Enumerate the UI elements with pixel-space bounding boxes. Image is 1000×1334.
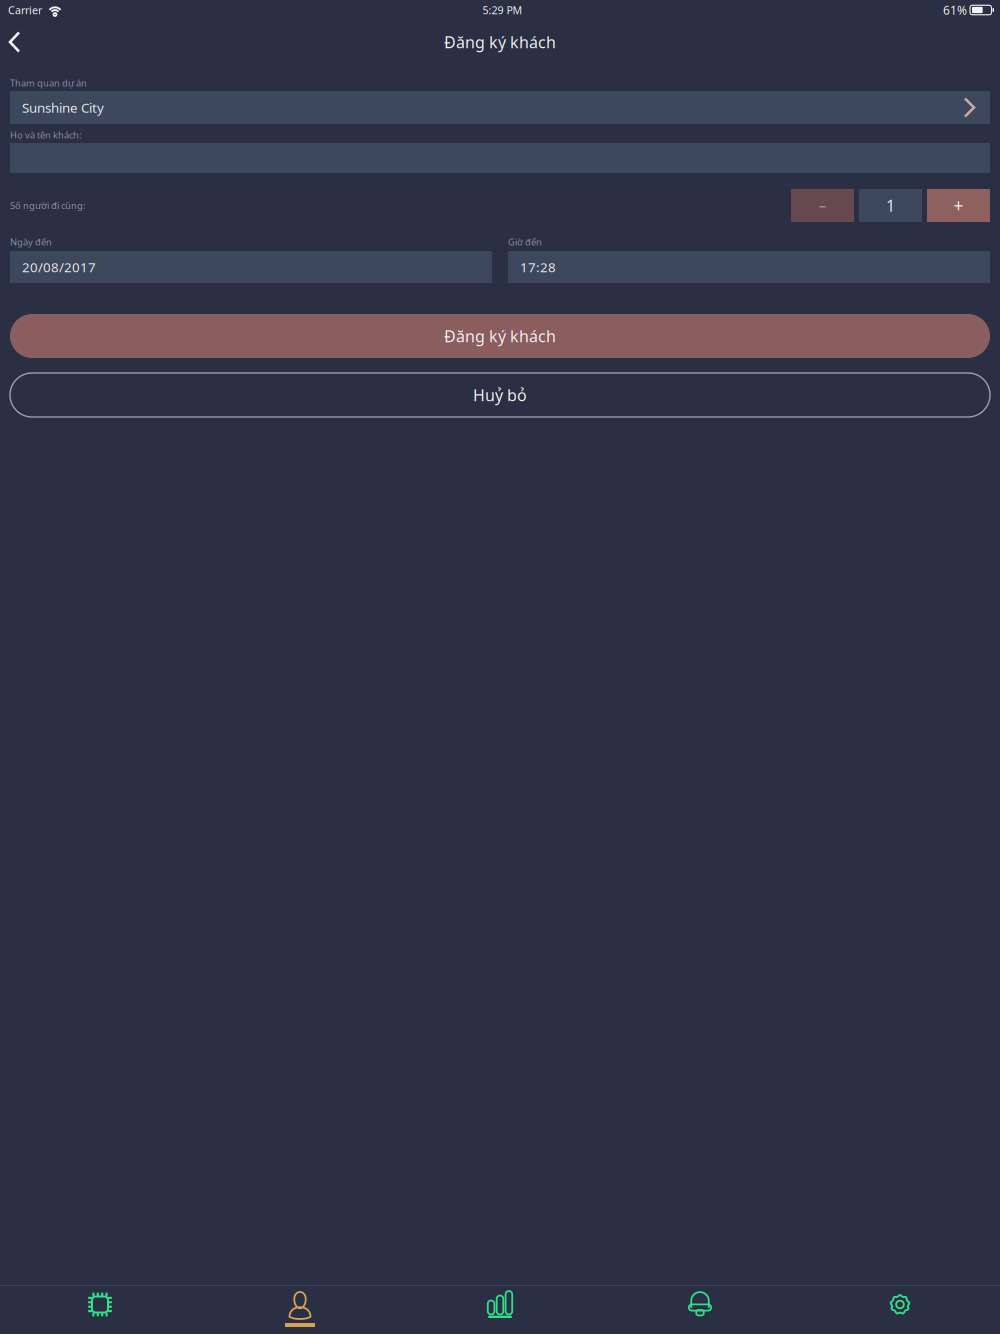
button[interactable]: Huỷ bỏ (10, 373, 990, 417)
staticText: 5:29 PM (482, 3, 522, 17)
staticText: 20/08/2017 (22, 258, 96, 276)
staticText: Số người đi cùng: (10, 199, 86, 212)
staticText: Carrier (8, 3, 42, 17)
button[interactable]: 20/08/2017 (10, 251, 492, 283)
staticText: Đăng ký khách (444, 325, 556, 347)
button[interactable]: Increase (927, 189, 990, 222)
button[interactable]: Thông báo (600, 1286, 800, 1334)
button[interactable]: Back (0, 20, 35, 64)
staticText: Tham quan dự án (10, 77, 87, 89)
staticText: Huỷ bỏ (473, 384, 527, 406)
button[interactable]: 17:28 (508, 251, 990, 283)
staticText: + (953, 194, 963, 217)
staticText: Họ và tên khách: (10, 129, 82, 141)
button[interactable]: Decrease (791, 189, 854, 222)
staticText: Giờ đến (508, 236, 542, 248)
button[interactable]: Khách hàng (200, 1286, 400, 1334)
staticText: 61% (943, 2, 967, 18)
staticText: Sunshine City (22, 99, 104, 116)
staticText: 17:28 (520, 258, 556, 276)
button[interactable]: Cài đặt (800, 1286, 1000, 1334)
button[interactable]: Sunshine City (10, 91, 990, 124)
staticText: Ngày đến (10, 236, 52, 248)
staticText: 1 (886, 195, 895, 216)
button[interactable]: Thống kê (400, 1286, 600, 1334)
button[interactable]: Đăng ký khách (10, 314, 990, 358)
staticText: – (819, 196, 826, 215)
staticText: Đăng ký khách (444, 31, 556, 53)
button[interactable]: Dashboard (0, 1286, 200, 1334)
